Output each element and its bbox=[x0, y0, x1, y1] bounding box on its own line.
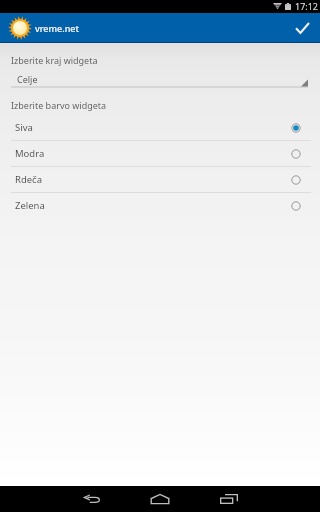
staticText: Izberite kraj widgeta bbox=[11, 54, 98, 66]
button[interactable]: Recents bbox=[199, 486, 259, 512]
button[interactable]: Done bbox=[288, 13, 316, 43]
button[interactable]: Celje bbox=[11, 68, 308, 90]
button[interactable]: Back bbox=[61, 486, 121, 512]
staticText: Modra bbox=[15, 147, 45, 160]
button[interactable]: Home bbox=[130, 486, 190, 512]
staticText: Zelena bbox=[15, 199, 45, 212]
staticText: Izberite barvo widgeta bbox=[11, 99, 107, 111]
staticText: Rdeča bbox=[15, 173, 42, 186]
staticText: 17:12 bbox=[295, 0, 319, 12]
button[interactable]: Rdeča bbox=[0, 167, 320, 192]
button[interactable]: Modra bbox=[0, 141, 320, 166]
staticText: vreme.net bbox=[35, 22, 79, 34]
button[interactable]: Zelena bbox=[0, 193, 320, 218]
button[interactable]: Siva bbox=[0, 115, 320, 140]
staticText: Celje bbox=[17, 73, 38, 85]
staticText: Siva bbox=[15, 121, 33, 134]
